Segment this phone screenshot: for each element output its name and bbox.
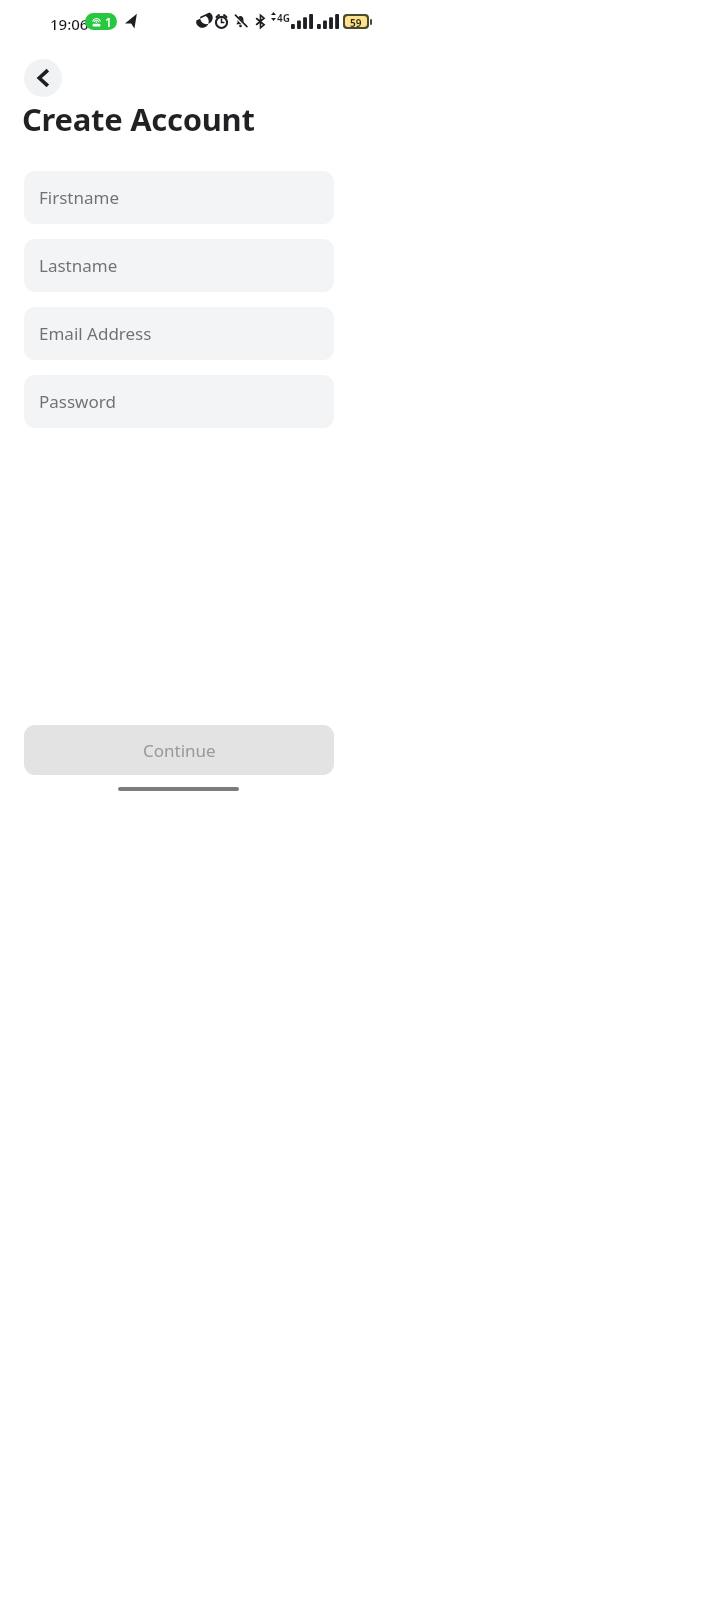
staticText: 59 — [350, 16, 362, 27]
staticText: Firstname — [39, 186, 120, 209]
button[interactable]: Firstname — [24, 171, 334, 224]
staticText: Password — [39, 390, 116, 413]
button[interactable]: Password — [24, 375, 334, 428]
staticText: 1 — [105, 14, 112, 30]
button[interactable]: Continue — [24, 725, 334, 775]
button[interactable]: Lastname — [24, 239, 334, 292]
staticText: 19:06 — [50, 14, 89, 34]
staticText: Continue — [143, 739, 216, 762]
staticText: 4G — [277, 11, 290, 25]
staticText: Lastname — [39, 254, 118, 277]
button[interactable]: Back — [24, 59, 62, 97]
staticText: Email Address — [39, 322, 152, 345]
staticText: Create Account — [22, 98, 255, 140]
button[interactable]: Email Address — [24, 307, 334, 360]
